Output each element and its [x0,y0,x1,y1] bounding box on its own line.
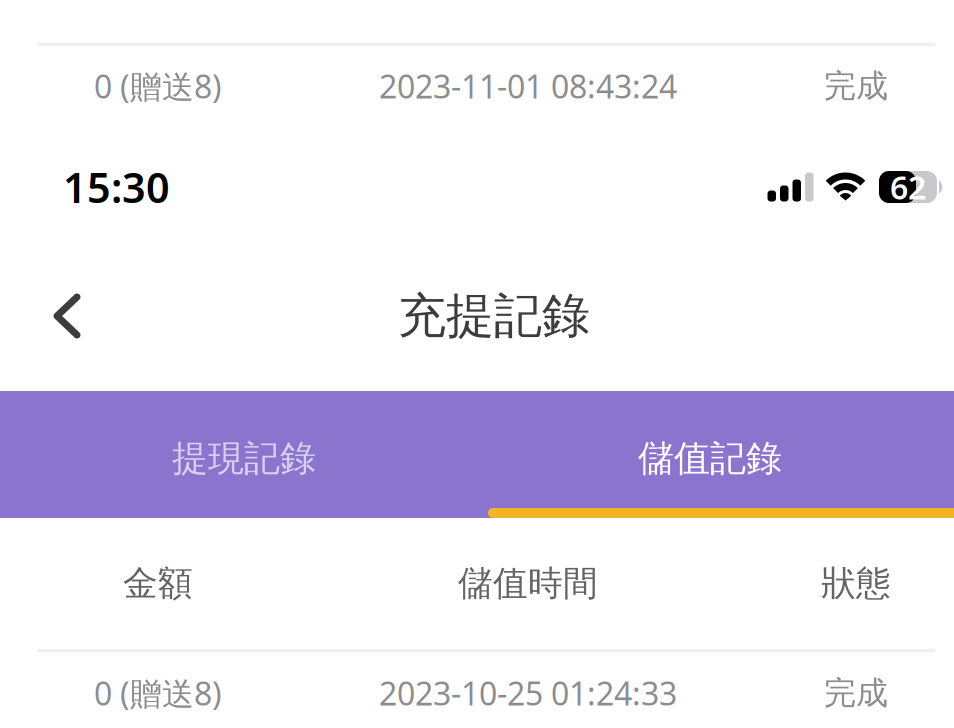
staticText: 提現記錄 [172,436,316,481]
staticText: 充提記錄 [398,286,590,345]
staticText: 15:30 [63,160,170,214]
staticText: 完成 [824,673,888,713]
button[interactable]: 提現記錄 [0,391,488,518]
staticText: 儲值時間 [458,562,598,605]
staticText: 完成 [824,66,888,106]
staticText: 62 [890,166,926,208]
button[interactable]: Back [25,256,109,376]
staticText: 狀態 [821,562,891,605]
staticText: 0 (贈送8) [94,65,222,107]
button[interactable]: 儲值記錄 [488,391,954,518]
staticText: 2023-11-01 08:43:24 [379,65,677,107]
staticText: 0 (贈送8) [94,672,222,714]
staticText: 儲值記錄 [638,436,782,481]
staticText: 金額 [123,562,193,605]
staticText: 2023-10-25 01:24:33 [379,672,677,714]
